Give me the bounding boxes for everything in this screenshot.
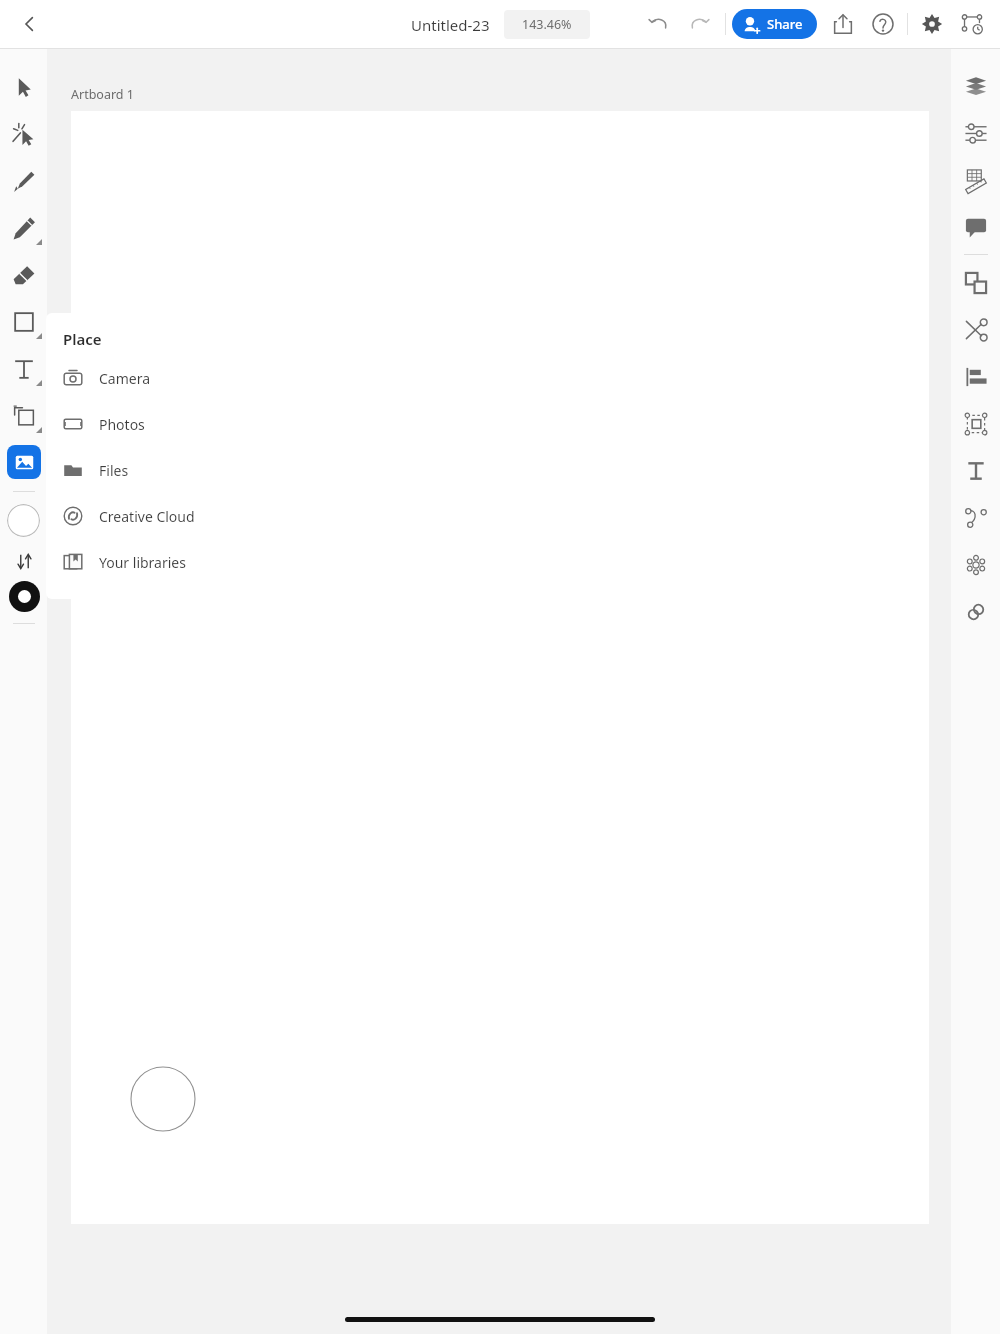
button[interactable]: Magic wand	[0, 110, 47, 157]
button[interactable]: Ruler	[951, 156, 1000, 203]
button[interactable]: Layers	[951, 62, 1000, 109]
staticText: Artboard 1	[71, 86, 134, 103]
button[interactable]: Select	[0, 63, 47, 110]
button[interactable]: Type	[0, 345, 47, 392]
button[interactable]: Link	[951, 588, 1000, 635]
button[interactable]: History	[952, 4, 992, 44]
staticText: Photos	[99, 415, 145, 434]
button[interactable]: Properties	[951, 109, 1000, 156]
button[interactable]: Creative Cloud	[46, 493, 250, 539]
button[interactable]: Cut	[951, 306, 1000, 353]
button[interactable]: Camera	[46, 355, 250, 401]
button[interactable]: Back	[10, 4, 50, 44]
button[interactable]: Help	[863, 4, 903, 44]
button[interactable]: Stroke color	[7, 579, 41, 613]
button[interactable]: Comments	[951, 203, 1000, 250]
staticText: 143.46%	[522, 16, 572, 33]
button[interactable]: Undo	[639, 4, 679, 44]
button[interactable]: Text options	[951, 447, 1000, 494]
button[interactable]: Fill color	[7, 504, 40, 537]
staticText: Place	[63, 329, 102, 349]
button[interactable]: Swap fill and stroke	[10, 547, 38, 575]
button[interactable]: Eraser	[0, 251, 47, 298]
staticText: Files	[99, 461, 129, 480]
button[interactable]: Your libraries	[46, 539, 250, 585]
button[interactable]: Settings	[912, 4, 952, 44]
button[interactable]: Transform	[0, 392, 47, 439]
button[interactable]: Redo	[679, 4, 719, 44]
button[interactable]: Duplicate	[951, 259, 1000, 306]
button[interactable]: Pen	[0, 157, 47, 204]
staticText: Untitled-23	[411, 15, 490, 35]
staticText: Creative Cloud	[99, 507, 195, 526]
button[interactable]: Shape	[0, 298, 47, 345]
button[interactable]: Files	[46, 447, 250, 493]
button[interactable]: Group	[951, 400, 1000, 447]
button[interactable]: Repeat	[951, 541, 1000, 588]
button[interactable]: Path edit	[951, 494, 1000, 541]
button[interactable]: Photos	[46, 401, 250, 447]
button[interactable]: Share	[732, 9, 817, 39]
button[interactable]: Export	[823, 4, 863, 44]
button[interactable]: Align	[951, 353, 1000, 400]
staticText: Your libraries	[99, 553, 186, 572]
button[interactable]: 143.46%	[504, 10, 590, 39]
staticText: Camera	[99, 369, 151, 388]
button[interactable]: Place image	[7, 445, 41, 479]
staticText: Share	[767, 15, 803, 33]
button[interactable]: Pencil	[0, 204, 47, 251]
